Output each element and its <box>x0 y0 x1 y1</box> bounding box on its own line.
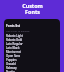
button[interactable]: Montserrat <box>6 50 58 54</box>
button[interactable]: Open Sans <box>6 54 58 58</box>
staticText: Lato Black <box>6 46 20 50</box>
button[interactable]: Oswald <box>6 62 58 66</box>
staticText: Oswald <box>6 62 16 66</box>
button[interactable]: Lato Regular <box>6 42 58 46</box>
button[interactable]: Lato Black <box>6 46 58 50</box>
button[interactable]: Roboto Bold <box>6 38 58 42</box>
button[interactable]: Raleway <box>6 66 58 70</box>
button[interactable]: Nunito <box>6 70 58 72</box>
button[interactable]: Roboto Light <box>6 34 58 38</box>
staticText: Raleway <box>6 66 17 70</box>
button[interactable]: Poppins <box>6 58 58 62</box>
staticText: Open Sans <box>6 54 21 58</box>
staticText: Poppins <box>6 58 17 62</box>
staticText: Tap a font to preview <box>6 29 30 32</box>
staticText: Lato Regular <box>6 42 23 46</box>
staticText: Roboto Bold <box>6 38 23 42</box>
staticText: Nunito <box>6 70 16 72</box>
staticText: Roboto Light <box>6 34 23 38</box>
staticText: Custom Fonts <box>22 2 43 15</box>
staticText: Montserrat <box>6 50 21 54</box>
staticText: Fonts list <box>6 24 21 28</box>
